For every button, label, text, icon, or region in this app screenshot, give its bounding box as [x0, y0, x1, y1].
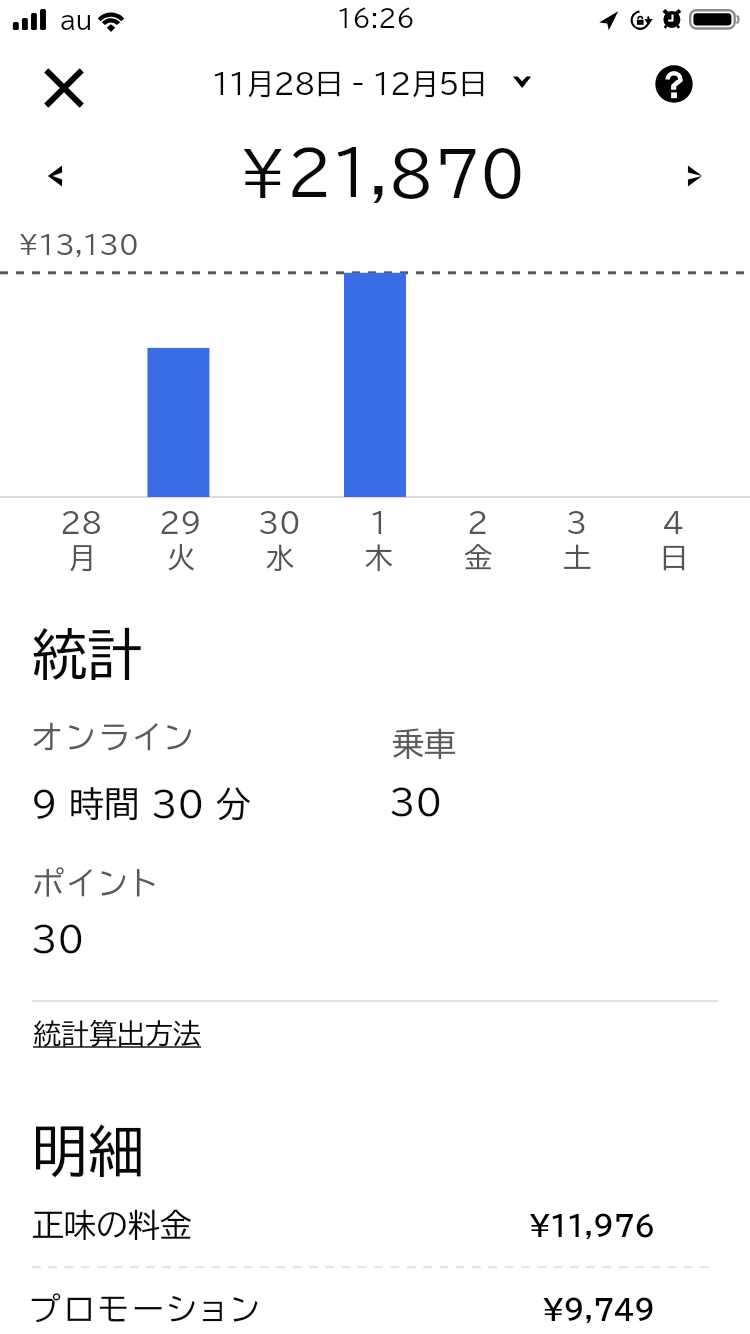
button[interactable]: 正味の料金 [32, 1192, 655, 1258]
button[interactable]: Close [34, 58, 94, 118]
staticText: ¥9,749 [264, 1296, 655, 1323]
staticText: 日 [660, 543, 688, 571]
staticText: 11月28日 - 12月5日 [212, 69, 487, 97]
staticText: 16:26 [1, 6, 750, 30]
staticText: ¥21,870 [7, 143, 750, 203]
staticText: 2 [467, 508, 489, 536]
button[interactable]: 11月28日 - 12月5日 [212, 57, 533, 109]
staticText: 土 [563, 543, 591, 571]
staticText: ¥13,130 [18, 231, 139, 257]
button[interactable]: プロモーション [29, 1276, 655, 1334]
staticText: ¥11,976 [192, 1212, 655, 1239]
staticText: 正味の料金 [32, 1209, 192, 1241]
staticText: 乗車 [392, 728, 456, 760]
staticText: プロモーション [29, 1293, 264, 1325]
staticText: 1 [370, 508, 388, 536]
staticText: 28 [60, 508, 103, 536]
staticText: 30 [389, 784, 443, 819]
staticText: 9 時間 30 分 [31, 786, 251, 821]
staticText: 火 [167, 543, 195, 571]
staticText: オンライン [32, 721, 198, 753]
staticText: 明細 [32, 1123, 144, 1179]
staticText: 4 [663, 508, 685, 536]
button[interactable]: Help [644, 54, 704, 114]
staticText: ポイント [32, 867, 161, 899]
button[interactable]: Next week [670, 146, 720, 206]
button[interactable]: 統計算出方法 [33, 1009, 201, 1057]
staticText: 月 [68, 543, 96, 571]
staticText: 金 [464, 543, 492, 571]
staticText: 29 [159, 508, 202, 536]
staticText: 統計 [32, 627, 142, 682]
staticText: 水 [266, 543, 294, 571]
staticText: 統計算出方法 [33, 1019, 201, 1047]
staticText: 木 [365, 543, 393, 571]
staticText: 30 [258, 508, 301, 536]
button[interactable]: Previous week [30, 146, 80, 206]
staticText: 30 [31, 921, 85, 956]
staticText: au [60, 8, 93, 32]
staticText: 3 [566, 508, 588, 536]
